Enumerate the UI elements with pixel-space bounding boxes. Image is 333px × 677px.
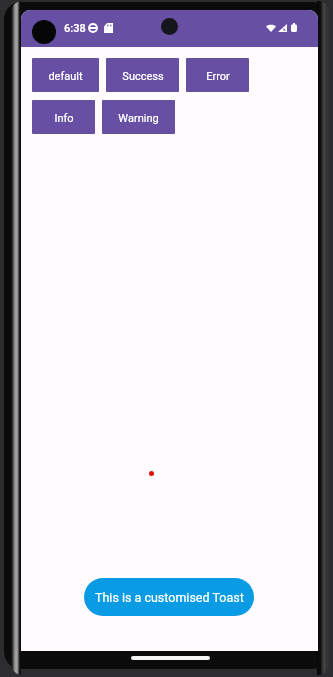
button[interactable]: This is a customised Toast (84, 578, 254, 616)
staticText: Warning (118, 112, 159, 125)
staticText: Error (206, 70, 230, 83)
button[interactable]: Success (106, 58, 179, 92)
button[interactable]: Profile (32, 20, 56, 44)
staticText: 6:38 (64, 22, 86, 35)
staticText: Info (54, 112, 74, 125)
button[interactable]: Info (32, 100, 95, 134)
staticText: This is a customised Toast (95, 590, 244, 605)
staticText: Success (122, 70, 164, 83)
button[interactable]: Error (186, 58, 249, 92)
staticText: default (48, 70, 83, 83)
button[interactable]: Warning (102, 100, 175, 134)
button[interactable]: default (32, 58, 99, 92)
